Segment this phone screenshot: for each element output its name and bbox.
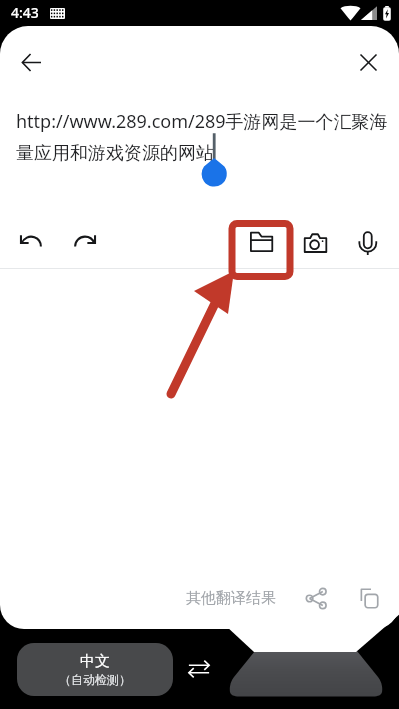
- staticText: http://www.289.com/289手游网是一个汇聚海量应用和游戏资源的…: [16, 109, 394, 164]
- button[interactable]: Undo: [10, 221, 54, 265]
- staticText: 4:43: [11, 3, 39, 22]
- button[interactable]: Documents: [239, 220, 283, 264]
- button[interactable]: 其他翻译结果: [180, 583, 282, 614]
- button[interactable]: Share: [294, 576, 338, 620]
- staticText: （自动检测）: [59, 672, 131, 687]
- button[interactable]: Swap languages: [178, 648, 220, 690]
- button[interactable]: Copy: [346, 576, 390, 620]
- button[interactable]: Camera: [294, 221, 338, 265]
- button[interactable]: Microphone: [346, 221, 390, 265]
- staticText: 其他翻译结果: [186, 589, 276, 608]
- button[interactable]: 中文: [17, 643, 173, 696]
- button[interactable]: Close: [346, 40, 390, 84]
- staticText: 中文: [80, 652, 110, 671]
- button[interactable]: Redo: [62, 221, 106, 265]
- button[interactable]: Back: [9, 40, 53, 84]
